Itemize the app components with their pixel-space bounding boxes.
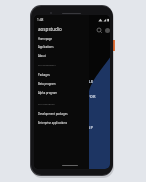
staticText: Homepage [38, 37, 52, 41]
staticText: aospstudio [38, 26, 62, 32]
button[interactable]: Packages [34, 70, 89, 79]
button[interactable]: Search [96, 27, 103, 34]
button[interactable]: Applications [34, 42, 89, 51]
staticText: SOLUTIONS FOR [62, 94, 96, 99]
button[interactable]: Enterprise applications [34, 118, 89, 127]
staticText: For Enterprise [38, 102, 55, 105]
button[interactable]: About [34, 51, 89, 60]
staticText: 1:48 [37, 18, 44, 22]
staticText: Enterprise applications [38, 121, 67, 125]
staticText: Packages [38, 73, 50, 77]
staticText: Alpha program [38, 91, 57, 95]
staticText: SIMPLE [78, 79, 94, 84]
staticText: For Developers [38, 63, 56, 66]
button[interactable]: Development packages [34, 109, 89, 118]
staticText: Beta program [38, 82, 56, 86]
staticText: Development packages [38, 112, 68, 116]
button[interactable]: Account [105, 28, 110, 33]
button[interactable]: Homepage [34, 34, 89, 43]
staticText: Applications [38, 45, 54, 49]
button[interactable]: Alpha program [34, 88, 89, 97]
staticText: About [38, 54, 46, 58]
staticText: AOSP [82, 125, 94, 130]
button[interactable]: Beta program [34, 79, 89, 88]
